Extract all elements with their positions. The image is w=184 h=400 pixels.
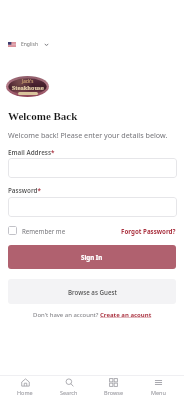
staticText: Jack's — [22, 78, 34, 84]
button[interactable]: Browse — [91, 376, 136, 396]
staticText: Don't have an account? — [33, 311, 100, 319]
staticText: Search — [60, 389, 78, 396]
staticText: Browse — [104, 389, 124, 396]
button[interactable]: Menu — [136, 376, 181, 396]
staticText: Browse as Guest — [68, 288, 117, 296]
staticText: Menu — [151, 389, 166, 396]
button[interactable]: Sign In — [8, 245, 176, 269]
staticText: Welcome Back — [8, 110, 78, 122]
button[interactable]: English — [8, 40, 49, 49]
button[interactable]: Forgot Password? — [121, 227, 176, 235]
button[interactable]: Create an acount — [100, 311, 152, 319]
button[interactable]: Home — [3, 376, 47, 396]
staticText: Email Address* — [8, 148, 55, 157]
button[interactable] — [8, 197, 177, 217]
staticText: Home — [17, 389, 33, 396]
staticText: English — [21, 41, 39, 48]
button[interactable]: Search — [47, 376, 91, 396]
staticText: Steakhouse — [12, 84, 44, 91]
staticText: Welcome back! Please enter your details … — [8, 130, 168, 140]
button[interactable]: Remember me — [8, 226, 66, 235]
staticText: Password* — [8, 186, 41, 195]
button[interactable]: Browse as Guest — [8, 279, 176, 304]
staticText: Remember me — [22, 227, 66, 235]
staticText: Sign In — [81, 253, 103, 261]
button[interactable] — [8, 158, 177, 178]
